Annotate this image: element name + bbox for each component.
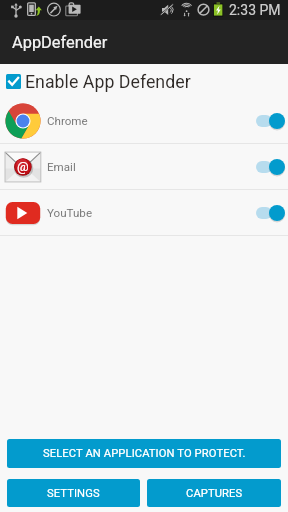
button[interactable]: SELECT AN APPLICATION TO PROTECT.	[7, 439, 281, 468]
button[interactable]: SETTINGS	[7, 479, 140, 507]
button[interactable]: Enable App Defender	[0, 64, 288, 98]
staticText: Email	[47, 160, 76, 174]
button[interactable]: CAPTURES	[147, 479, 281, 507]
staticText: AppDefender	[12, 33, 108, 52]
button[interactable]: Toggle YouTube protection	[256, 204, 285, 222]
staticText: SELECT AN APPLICATION TO PROTECT.	[43, 447, 246, 460]
staticText: Enable App Defender	[25, 71, 191, 92]
button[interactable]: Toggle Email protection	[256, 158, 285, 176]
button[interactable]: @	[0, 144, 288, 189]
staticText: SETTINGS	[47, 487, 100, 500]
button[interactable]: YouTube	[0, 190, 288, 235]
staticText: YouTube	[47, 206, 93, 220]
staticText: CAPTURES	[186, 487, 243, 500]
button[interactable]: Chrome	[0, 98, 288, 143]
staticText: 2:33 PM	[229, 2, 281, 18]
button[interactable]: Toggle Chrome protection	[256, 112, 285, 130]
staticText: @	[17, 159, 29, 174]
staticText: Chrome	[47, 114, 88, 128]
